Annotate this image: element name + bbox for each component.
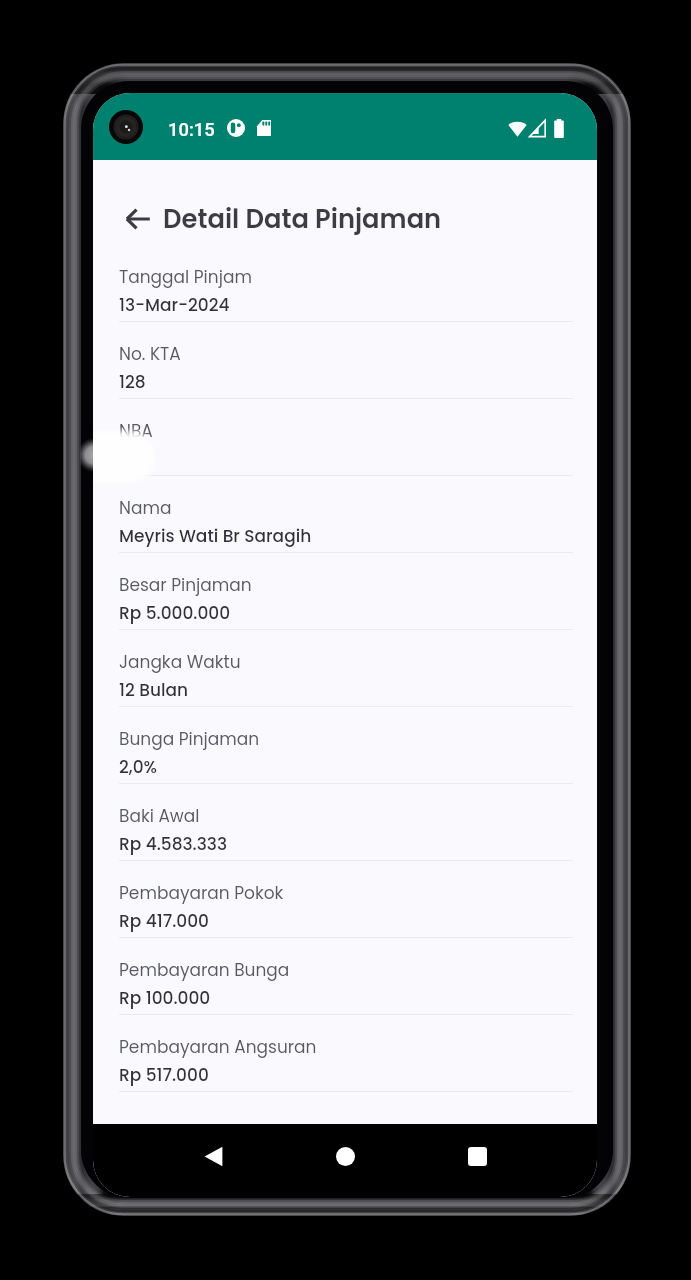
button[interactable]: Pembayaran Pokok bbox=[119, 861, 573, 938]
staticText: Bunga Pinjaman bbox=[119, 727, 260, 751]
staticText: 12 Bulan bbox=[119, 678, 188, 702]
button[interactable]: Besar Pinjaman bbox=[119, 553, 573, 630]
staticText: Meyris Wati Br Saragih bbox=[119, 524, 312, 548]
staticText: NBA bbox=[119, 419, 153, 443]
button[interactable]: Bunga Pinjaman bbox=[119, 707, 573, 784]
button[interactable]: Back bbox=[111, 192, 164, 245]
button[interactable]: Tanggal Pinjam bbox=[119, 245, 573, 322]
staticText: Detail Data Pinjaman bbox=[163, 201, 442, 237]
button[interactable]: Recent apps bbox=[454, 1133, 500, 1179]
staticText: Rp 417.000 bbox=[119, 909, 209, 933]
staticText: 13-Mar-2024 bbox=[119, 293, 230, 317]
button[interactable]: NBA bbox=[119, 399, 573, 476]
staticText: Rp 4.583.333 bbox=[119, 832, 227, 856]
staticText: Rp 5.000.000 bbox=[119, 601, 231, 625]
staticText: Tanggal Pinjam bbox=[119, 265, 252, 289]
button[interactable]: Pembayaran Angsuran bbox=[119, 1015, 573, 1092]
button[interactable]: Pembayaran Bunga bbox=[119, 938, 573, 1015]
staticText: Pembayaran Pokok bbox=[119, 881, 284, 905]
staticText: Rp 100.000 bbox=[119, 986, 211, 1010]
button[interactable]: Baki Awal bbox=[119, 784, 573, 861]
button[interactable]: Back bbox=[190, 1133, 236, 1179]
staticText: 10:15 bbox=[168, 119, 215, 141]
staticText: Baki Awal bbox=[119, 804, 200, 828]
staticText: Pembayaran Angsuran bbox=[119, 1035, 317, 1059]
staticText: 128 bbox=[119, 370, 146, 394]
staticText: 2,0% bbox=[119, 755, 158, 779]
staticText: Besar Pinjaman bbox=[119, 573, 252, 597]
staticText: Jangka Waktu bbox=[119, 650, 241, 674]
button[interactable]: No. KTA bbox=[119, 322, 573, 399]
staticText: Pembayaran Bunga bbox=[119, 958, 290, 982]
staticText: Rp 517.000 bbox=[119, 1063, 209, 1087]
button[interactable]: Jangka Waktu bbox=[119, 630, 573, 707]
staticText: Nama bbox=[119, 496, 172, 520]
button[interactable]: Home bbox=[322, 1133, 368, 1179]
button[interactable]: Nama bbox=[119, 476, 573, 553]
staticText: No. KTA bbox=[119, 342, 181, 366]
